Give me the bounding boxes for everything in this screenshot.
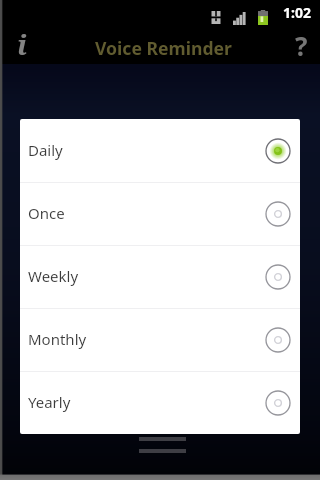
staticText: Monthly xyxy=(28,329,87,349)
staticText: Voice Reminder xyxy=(95,36,232,60)
staticText: Yearly xyxy=(28,392,71,412)
button[interactable]: Help xyxy=(278,25,320,64)
staticText: Once xyxy=(28,203,65,223)
button[interactable]: Daily xyxy=(20,119,300,182)
button[interactable]: Info xyxy=(0,25,42,64)
button[interactable]: Monthly xyxy=(20,308,300,371)
button[interactable]: Yearly xyxy=(20,371,300,434)
staticText: i xyxy=(17,25,27,63)
button[interactable]: Once xyxy=(20,182,300,245)
staticText: ? xyxy=(295,28,308,63)
button[interactable]: Weekly xyxy=(20,245,300,308)
staticText: 1:02 xyxy=(283,3,311,22)
staticText: Daily xyxy=(28,140,63,160)
staticText: Weekly xyxy=(28,266,79,286)
